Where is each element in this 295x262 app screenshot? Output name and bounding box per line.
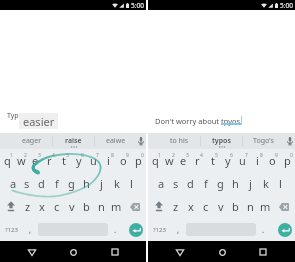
staticText: 8 — [111, 152, 114, 159]
staticText: y — [225, 153, 231, 168]
button[interactable]: x — [183, 195, 198, 218]
button[interactable]: w — [14, 149, 28, 172]
button[interactable]: c — [198, 195, 213, 218]
button[interactable]: Back — [170, 242, 190, 262]
button[interactable]: f — [198, 172, 213, 195]
button[interactable]: d — [34, 172, 49, 195]
button[interactable]: n — [243, 195, 258, 218]
staticText: 0 — [141, 152, 144, 159]
button[interactable]: to his — [159, 133, 200, 149]
button[interactable]: raise — [53, 133, 94, 149]
staticText: 5:00 — [280, 1, 293, 10]
button[interactable]: Shift — [148, 195, 169, 218]
button[interactable]: m — [109, 195, 124, 218]
button[interactable]: s — [168, 172, 183, 195]
button[interactable]: Recents — [253, 242, 273, 262]
button[interactable]: Recents — [105, 242, 125, 262]
button[interactable]: ?123 — [148, 218, 170, 241]
staticText: w — [17, 153, 26, 168]
button[interactable]: i — [101, 149, 116, 172]
button[interactable]: v — [213, 195, 228, 218]
staticText: z — [173, 199, 179, 214]
button[interactable]: r — [42, 149, 56, 172]
button[interactable]: typos — [201, 133, 242, 149]
button[interactable]: e — [28, 149, 42, 172]
button[interactable]: . — [108, 218, 123, 241]
button[interactable]: z — [169, 195, 183, 218]
button[interactable]: Delete — [273, 195, 295, 218]
button[interactable]: f — [49, 172, 64, 195]
staticText: k — [114, 176, 120, 191]
button[interactable]: g — [64, 172, 79, 195]
button[interactable]: n — [94, 195, 109, 218]
button[interactable]: Delete — [124, 195, 146, 218]
staticText: d — [38, 176, 45, 191]
button[interactable]: l — [124, 172, 139, 195]
button[interactable]: Shift — [0, 195, 21, 218]
button[interactable]: Voice input — [136, 133, 146, 149]
button[interactable]: , — [170, 218, 186, 241]
button[interactable]: u — [86, 149, 101, 172]
button[interactable]: . — [256, 218, 271, 241]
button[interactable]: ?123 — [0, 218, 22, 241]
button[interactable]: t — [205, 149, 220, 172]
staticText: t — [62, 153, 66, 168]
button[interactable]: d — [183, 172, 198, 195]
button[interactable]: b — [228, 195, 243, 218]
button[interactable]: o — [116, 149, 131, 172]
button[interactable]: Enter — [126, 218, 146, 241]
button[interactable]: Home — [63, 242, 83, 262]
staticText: easier — [23, 114, 55, 129]
button[interactable]: x — [35, 195, 49, 218]
button[interactable]: z — [21, 195, 35, 218]
button[interactable]: , — [22, 218, 38, 241]
button[interactable]: k — [258, 172, 273, 195]
button[interactable]: w — [162, 149, 176, 172]
button[interactable]: eaiwe — [95, 133, 136, 149]
staticText: l — [130, 176, 133, 191]
staticText: 3 — [38, 152, 41, 159]
button[interactable]: i — [250, 149, 265, 172]
button[interactable]: j — [94, 172, 109, 195]
button[interactable]: j — [243, 172, 258, 195]
button[interactable]: t — [56, 149, 71, 172]
button[interactable]: p — [280, 149, 295, 172]
button[interactable]: o — [265, 149, 280, 172]
button[interactable]: a — [6, 172, 20, 195]
button[interactable]: Enter — [274, 218, 295, 241]
button[interactable]: q — [0, 149, 14, 172]
button[interactable]: s — [20, 172, 34, 195]
button[interactable]: a — [154, 172, 168, 195]
button[interactable]: p — [131, 149, 146, 172]
button[interactable]: Home — [212, 242, 232, 262]
button[interactable]: b — [79, 195, 94, 218]
staticText: o — [120, 153, 127, 168]
button[interactable]: y — [71, 149, 86, 172]
button[interactable]: eager — [11, 133, 52, 149]
button[interactable]: h — [79, 172, 94, 195]
button[interactable]: Voice input — [284, 133, 295, 149]
staticText: Typ — [7, 111, 19, 121]
staticText: g — [68, 176, 75, 191]
staticText: l — [279, 176, 282, 191]
button[interactable]: v — [64, 195, 79, 218]
staticText: f — [204, 176, 208, 191]
staticText: 6 — [230, 152, 233, 159]
button[interactable]: e — [176, 149, 190, 172]
button[interactable]: l — [273, 172, 288, 195]
button[interactable]: c — [49, 195, 64, 218]
button[interactable]: y — [220, 149, 235, 172]
button[interactable]: k — [109, 172, 124, 195]
button[interactable]: q — [148, 149, 162, 172]
staticText: v — [218, 199, 224, 214]
button[interactable]: g — [213, 172, 228, 195]
button[interactable]: Back — [22, 242, 42, 262]
button[interactable]: Togo's — [243, 133, 284, 149]
button[interactable]: h — [228, 172, 243, 195]
button[interactable]: m — [258, 195, 273, 218]
staticText: . — [262, 224, 265, 235]
button[interactable]: u — [235, 149, 250, 172]
button[interactable]: r — [190, 149, 205, 172]
